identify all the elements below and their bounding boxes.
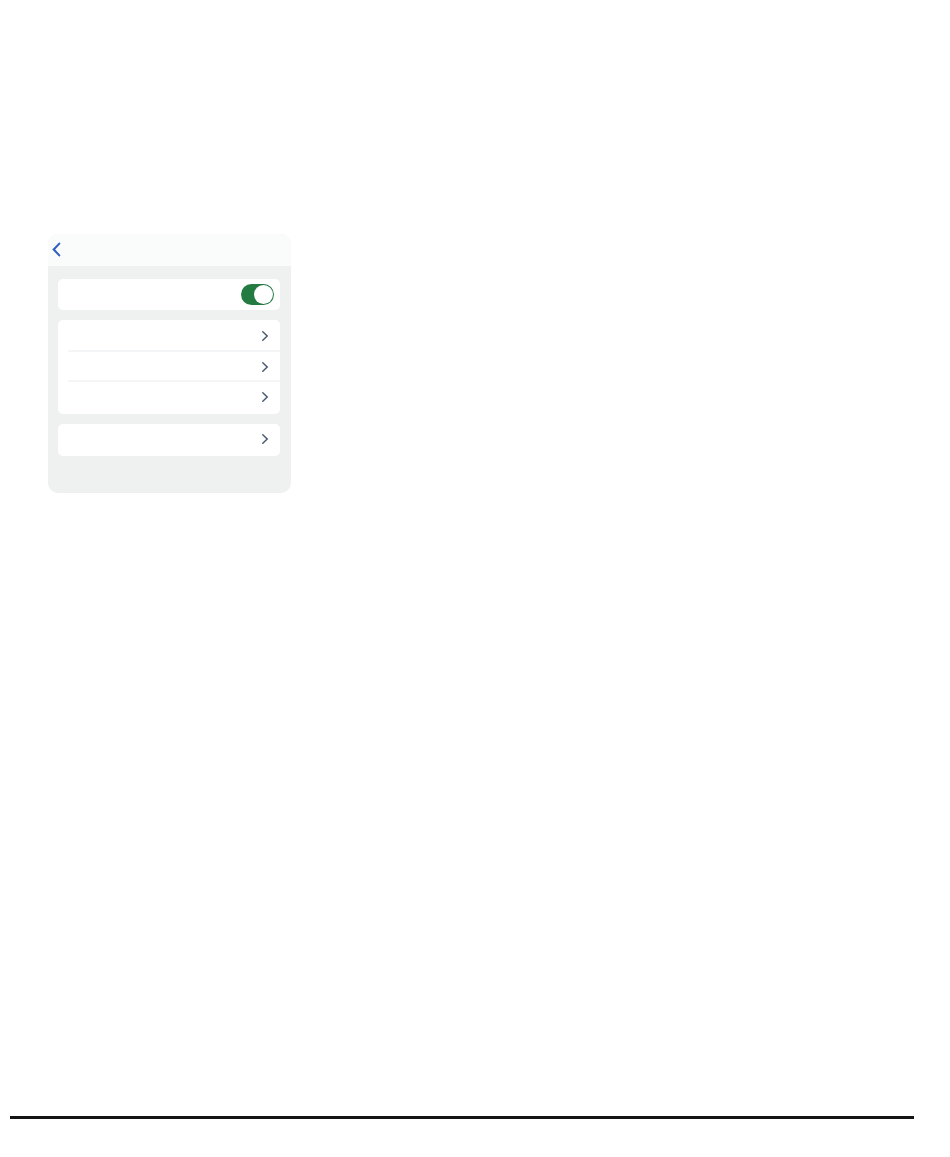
button[interactable]: Open settings item 3	[58, 380, 280, 414]
button[interactable]: Open settings item 4	[58, 424, 280, 456]
button[interactable]: Open settings item 2	[58, 350, 280, 380]
button[interactable]: Open settings item 1	[58, 320, 280, 351]
button[interactable]: Back	[48, 238, 68, 261]
button[interactable]: Toggle setting	[241, 284, 274, 305]
button[interactable]	[58, 279, 280, 310]
